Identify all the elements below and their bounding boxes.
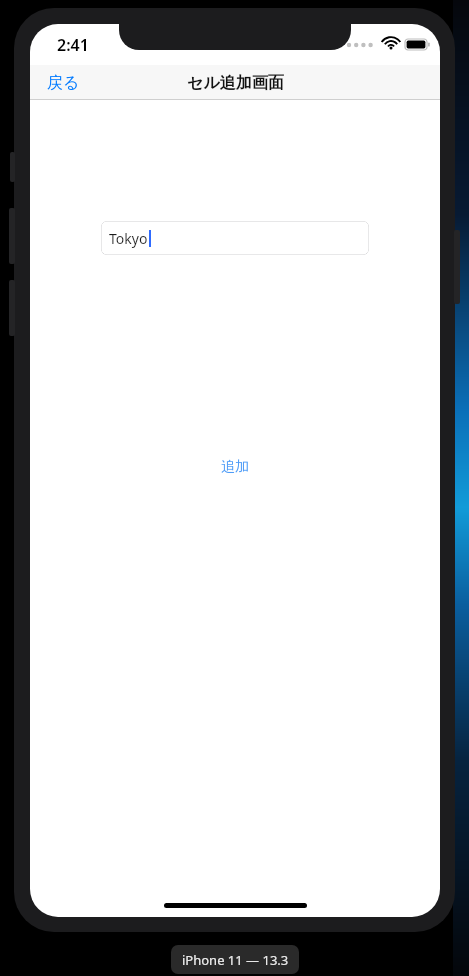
staticText: 戻る [47,73,80,93]
other: Simulated device: iPhone 11 — 13.3 [171,945,299,974]
staticText: 追加 [221,458,249,476]
button[interactable]: 戻る [39,67,88,99]
button[interactable]: Tokyo [101,221,369,255]
staticText: セル追加画面 [187,73,284,93]
staticText: Tokyo [109,229,148,248]
staticText: iPhone 11 — 13.3 [182,951,289,969]
button[interactable]: 追加 [207,452,263,482]
staticText: 2:41 [57,34,89,56]
